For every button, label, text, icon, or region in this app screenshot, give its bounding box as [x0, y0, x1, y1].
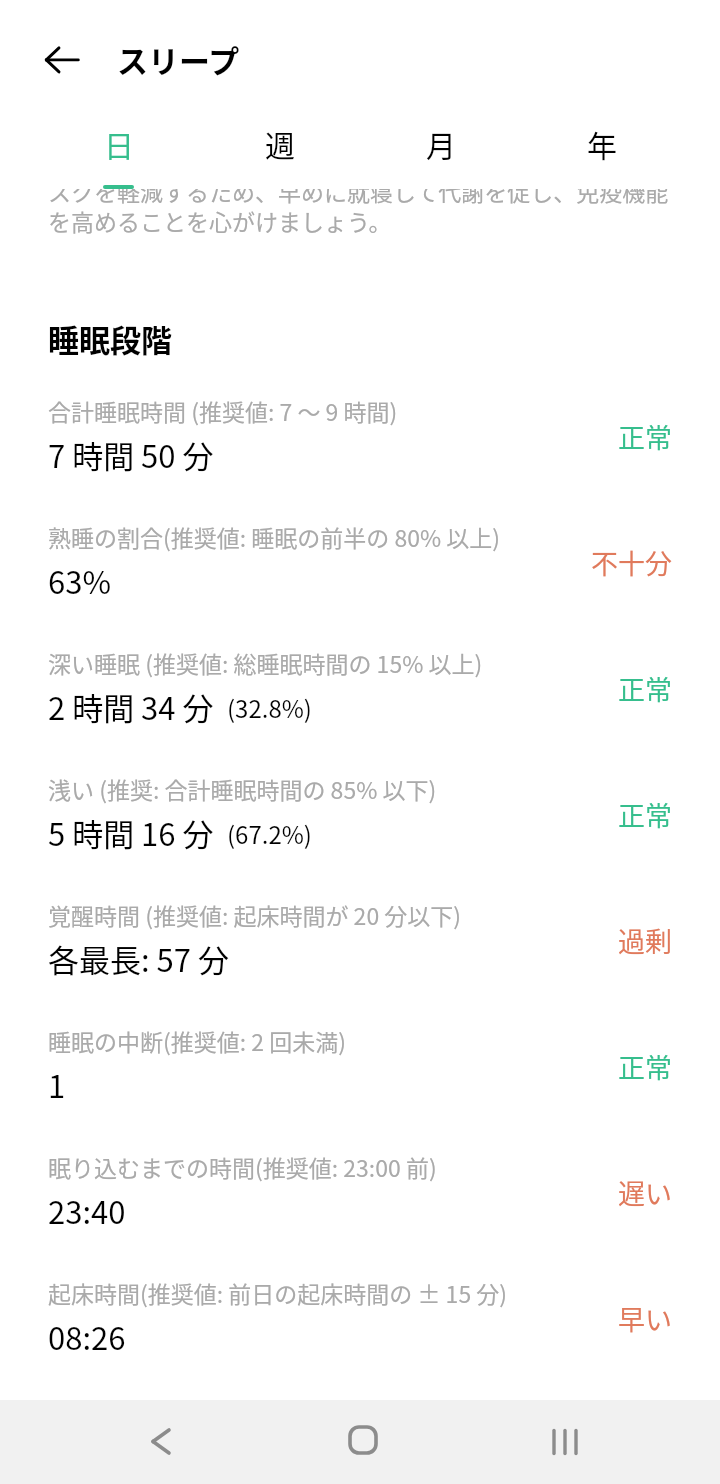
button[interactable]: 浅い (推奨: 合計睡眠時間の 85% 以下) [0, 772, 720, 898]
staticText: スリープ [117, 37, 240, 82]
staticText: 熟睡の割合(推奨値: 睡眠の前半の 80% 以上) [48, 520, 501, 553]
staticText: 年 [587, 122, 617, 165]
button[interactable]: Back [119, 1400, 203, 1484]
button[interactable]: 月 [360, 113, 521, 183]
staticText: 眠り込むまでの時間(推奨値: 23:00 前) [48, 1150, 437, 1183]
staticText: 1 [48, 1062, 66, 1107]
staticText: 2 時間 34 分 [48, 684, 214, 729]
staticText: 正常 [618, 1047, 672, 1086]
staticText: を高めることを心がけましょう。 [48, 204, 392, 237]
button[interactable]: 眠り込むまでの時間(推奨値: 23:00 前) [0, 1150, 720, 1276]
button[interactable]: 日 [38, 113, 199, 183]
staticText: (32.8%) [227, 690, 312, 725]
button[interactable]: 深い睡眠 (推奨値: 総睡眠時間の 15% 以上) [0, 646, 720, 772]
staticText: 合計睡眠時間 (推奨値: 7 ～ 9 時間) [48, 394, 398, 427]
staticText: 不十分 [591, 543, 672, 582]
staticText: 23:40 [48, 1188, 126, 1233]
staticText: 63% [48, 558, 111, 603]
button[interactable]: Back [30, 36, 78, 84]
button[interactable]: 週 [199, 113, 360, 183]
button[interactable]: 年 [521, 113, 682, 183]
staticText: 睡眠の中断(推奨値: 2 回未満) [48, 1024, 347, 1057]
button[interactable]: Recent apps [523, 1400, 607, 1484]
button[interactable]: 睡眠の中断(推奨値: 2 回未満) [0, 1024, 720, 1150]
button[interactable]: 合計睡眠時間 (推奨値: 7 ～ 9 時間) [0, 394, 720, 520]
staticText: 5 時間 16 分 [48, 810, 214, 855]
staticText: (67.2%) [227, 816, 312, 851]
button[interactable]: Home [321, 1398, 405, 1482]
button[interactable]: 覚醒時間 (推奨値: 起床時間が 20 分以下) [0, 898, 720, 1024]
staticText: 浅い (推奨: 合計睡眠時間の 85% 以下) [48, 772, 437, 805]
staticText: 起床時間(推奨値: 前日の起床時間の ± 15 分) [48, 1276, 508, 1309]
button[interactable]: 熟睡の割合(推奨値: 睡眠の前半の 80% 以上) [0, 520, 720, 646]
staticText: 遅い [618, 1173, 672, 1212]
button[interactable]: 起床時間(推奨値: 前日の起床時間の ± 15 分) [0, 1276, 720, 1402]
staticText: 08:26 [48, 1314, 126, 1359]
staticText: 早い [618, 1299, 672, 1338]
staticText: 各最長: 57 分 [48, 936, 229, 981]
staticText: 週 [265, 122, 295, 165]
staticText: 7 時間 50 分 [48, 432, 214, 477]
staticText: 正常 [618, 795, 672, 834]
staticText: 日 [104, 122, 134, 165]
staticText: 正常 [618, 669, 672, 708]
staticText: 深い睡眠 (推奨値: 総睡眠時間の 15% 以上) [48, 646, 483, 679]
staticText: 正常 [618, 417, 672, 456]
staticText: 月 [426, 122, 456, 165]
staticText: 睡眠段階 [48, 316, 172, 361]
staticText: スクを軽減するため、早めに就寝して代謝を促し、免疫機能 [48, 189, 669, 207]
staticText: 覚醒時間 (推奨値: 起床時間が 20 分以下) [48, 898, 462, 931]
staticText: 過剰 [618, 921, 672, 960]
